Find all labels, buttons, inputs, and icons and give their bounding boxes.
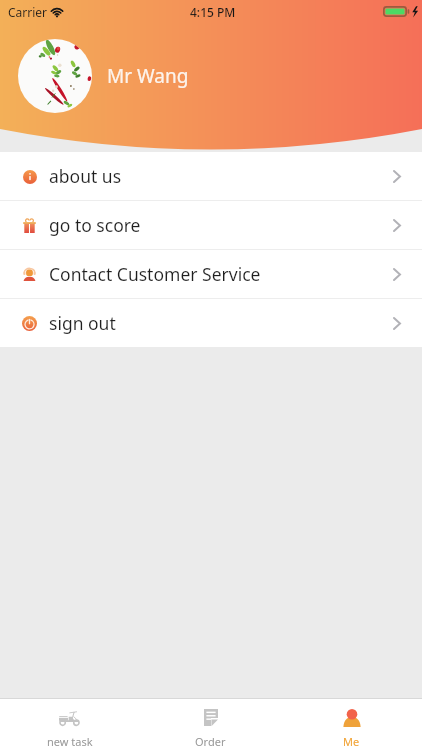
staticText: new task bbox=[47, 734, 93, 749]
staticText: go to score bbox=[49, 213, 141, 237]
staticText: sign out bbox=[49, 311, 116, 335]
staticText: Me bbox=[343, 734, 360, 749]
other: New task bbox=[59, 709, 81, 726]
button[interactable]: Order bbox=[140, 699, 281, 750]
other: Order bbox=[204, 709, 218, 726]
button[interactable]: go to score bbox=[0, 201, 422, 249]
staticText: Contact Customer Service bbox=[49, 262, 261, 286]
button[interactable]: Contact Customer Service bbox=[0, 250, 422, 298]
staticText: 4:15 PM bbox=[190, 4, 236, 20]
staticText: about us bbox=[49, 164, 122, 188]
button[interactable]: sign out bbox=[0, 299, 422, 347]
staticText: Order bbox=[195, 734, 226, 749]
other: Me bbox=[343, 709, 361, 727]
staticText: Mr Wang bbox=[107, 63, 189, 89]
button[interactable]: about us bbox=[0, 152, 422, 200]
button[interactable]: Me bbox=[281, 699, 422, 750]
staticText: Carrier bbox=[8, 4, 48, 20]
button[interactable]: New task bbox=[0, 699, 140, 750]
